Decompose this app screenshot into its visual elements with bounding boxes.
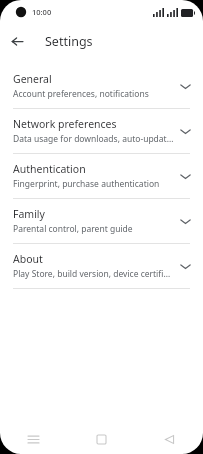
button[interactable]: Authentication [0, 154, 203, 198]
button[interactable]: Network preferences [0, 109, 203, 153]
button[interactable]: General [0, 64, 203, 108]
staticText: Settings [45, 33, 93, 50]
staticText: Fingerprint, purchase authentication [13, 178, 160, 190]
staticText: Parental control, parent guide [13, 223, 133, 235]
staticText: Play Store, build version, device certif… [13, 268, 174, 280]
staticText: Data usage for downloads, auto-updates [13, 133, 174, 145]
button[interactable]: Family [0, 199, 203, 243]
staticText: Account preferences, notifications [13, 88, 149, 100]
button[interactable]: Recent apps [0, 424, 67, 454]
staticText: About [13, 252, 43, 266]
staticText: General [13, 72, 52, 86]
button[interactable]: Back [7, 31, 28, 52]
staticText: 10:00 [32, 7, 52, 17]
staticText: Network preferences [13, 117, 117, 131]
button[interactable]: Back [135, 424, 203, 454]
button[interactable]: About [0, 244, 203, 288]
button[interactable]: Home [67, 424, 135, 454]
staticText: Authentication [13, 162, 86, 176]
staticText: Family [13, 207, 45, 221]
